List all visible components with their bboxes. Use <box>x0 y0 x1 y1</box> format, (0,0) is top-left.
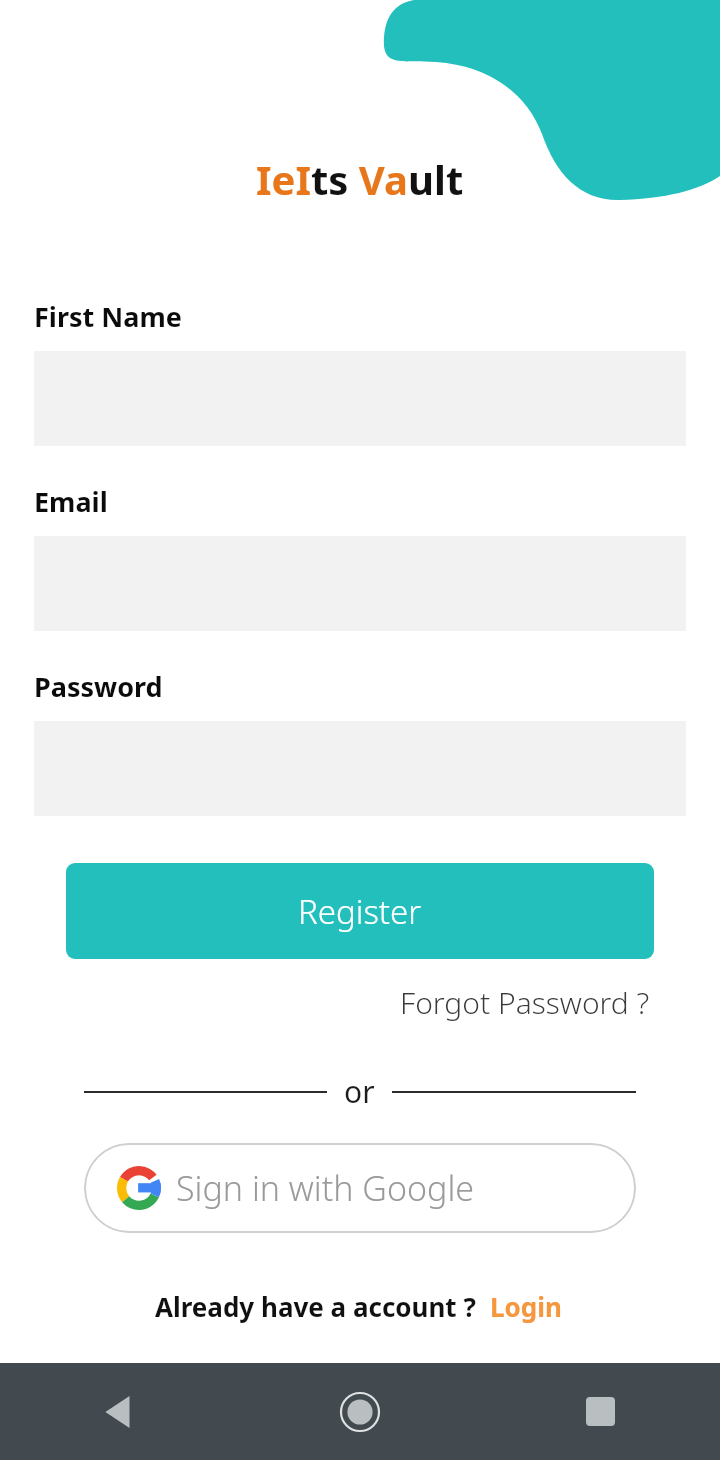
button[interactable]: Home <box>240 1363 480 1460</box>
staticText: Email <box>34 483 108 520</box>
staticText: or <box>344 1071 375 1112</box>
staticText: Forgot Password ? <box>400 982 650 1023</box>
staticText: Sign in with Google <box>176 1165 475 1211</box>
button[interactable]: Back <box>0 1363 240 1460</box>
button[interactable]: Sign in with Google <box>84 1143 636 1233</box>
staticText: Already have a account ? <box>155 1289 476 1324</box>
button[interactable]: Recent apps <box>480 1363 720 1460</box>
staticText: Login <box>490 1289 562 1324</box>
button[interactable]: Login <box>476 1283 566 1330</box>
staticText: Password <box>34 668 163 705</box>
staticText: IeIts Vault <box>256 152 464 206</box>
button[interactable]: Register <box>66 863 654 959</box>
staticText: First Name <box>34 298 182 335</box>
button[interactable]: Forgot Password ? <box>396 976 654 1029</box>
staticText: Register <box>298 889 422 934</box>
